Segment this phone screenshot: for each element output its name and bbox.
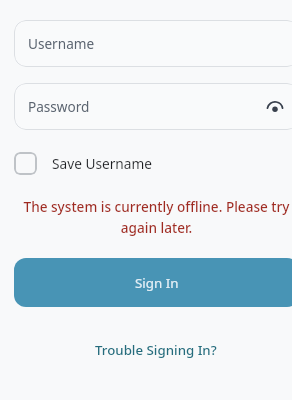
button[interactable]: Sign In [14, 258, 292, 307]
staticText: Sign In [135, 274, 179, 292]
button[interactable]: Save Username [14, 152, 153, 175]
button[interactable]: Username [14, 20, 292, 67]
button[interactable]: Trouble Signing In? [91, 337, 221, 363]
staticText: Username [28, 34, 95, 53]
staticText: Save Username [52, 154, 153, 173]
staticText: Password [28, 97, 90, 116]
button[interactable]: Password [14, 83, 292, 130]
button[interactable]: Show password [263, 97, 287, 121]
staticText: The system is currently offline. Please … [14, 197, 292, 237]
